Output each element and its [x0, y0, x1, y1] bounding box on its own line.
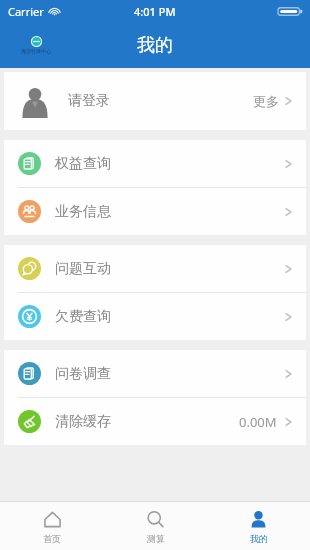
staticText: 更多 — [253, 93, 279, 109]
staticText: 请登录 — [68, 92, 110, 110]
staticText: 权益查询 — [55, 155, 111, 173]
staticText: 4:01 PM — [134, 4, 176, 19]
staticText: 欠费查询 — [55, 308, 111, 326]
staticText: 我的 — [137, 34, 173, 57]
button[interactable]: 业务信息 — [4, 188, 306, 235]
staticText: 清除缓存 — [55, 413, 111, 431]
button[interactable]: 问卷调查 — [4, 350, 306, 397]
staticText: 问卷调查 — [55, 365, 111, 383]
button[interactable]: 清除缓存 — [4, 398, 306, 445]
staticText: 我的 — [250, 533, 268, 544]
staticText: Carrier — [8, 4, 44, 19]
button[interactable]: Logo — [14, 28, 58, 62]
button[interactable]: 问题互动 — [4, 245, 306, 292]
staticText: 海淀社保中心 — [21, 48, 51, 54]
staticText: 0.00M — [239, 413, 277, 431]
button[interactable]: 欠费查询 — [4, 293, 306, 340]
staticText: 问题互动 — [55, 260, 111, 278]
button[interactable]: 我的 — [207, 502, 310, 550]
button[interactable]: 请登录 — [4, 72, 306, 130]
button[interactable]: 权益查询 — [4, 140, 306, 187]
button[interactable]: 测算 — [104, 502, 207, 550]
staticText: 首页 — [43, 533, 61, 544]
staticText: 测算 — [147, 533, 165, 544]
staticText: 业务信息 — [55, 203, 111, 221]
button[interactable]: 首页 — [0, 502, 104, 550]
